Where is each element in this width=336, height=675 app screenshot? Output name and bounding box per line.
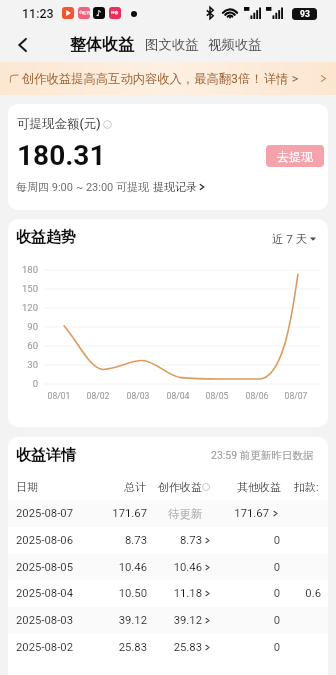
staticText: 8.73: [101, 534, 147, 547]
button[interactable]: 近 7 天: [270, 230, 318, 248]
staticText: 总计: [104, 480, 146, 494]
staticText: 0: [256, 534, 280, 547]
staticText: 08/07: [276, 391, 316, 401]
staticText: 08/03: [118, 391, 158, 401]
staticText: 08/02: [78, 391, 118, 401]
staticText: 去提现: [277, 149, 313, 164]
staticText: 2025-08-02: [16, 641, 74, 654]
staticText: 图文收益: [145, 36, 199, 53]
staticText: 近 7 天: [272, 232, 308, 246]
button[interactable]: 2025-08-02: [8, 634, 328, 661]
staticText: 180.31: [17, 139, 106, 172]
button[interactable]: 去提现: [266, 145, 324, 167]
staticText: 0: [14, 378, 38, 389]
staticText: 0: [256, 561, 280, 574]
staticText: 8.73: [158, 534, 202, 547]
staticText: 2025-08-05: [16, 561, 74, 574]
staticText: 25.83: [101, 641, 147, 654]
button[interactable]: 视频收益: [206, 35, 264, 54]
staticText: 90: [14, 321, 38, 332]
button[interactable]: Back: [8, 30, 38, 60]
staticText: 150: [14, 283, 38, 294]
staticText: 视频收益: [208, 36, 262, 53]
staticText: 39.12: [158, 614, 202, 627]
staticText: 创作收益提高高互动内容收入，最高翻3倍！: [22, 71, 263, 86]
button[interactable]: 2025-08-03: [8, 607, 328, 634]
staticText: 待更新: [158, 507, 202, 521]
staticText: 小红书: [79, 11, 90, 16]
staticText: 08/01: [39, 391, 79, 401]
staticText: 0: [256, 641, 280, 654]
staticText: 详情 >: [264, 71, 299, 86]
button[interactable]: 图文收益: [143, 35, 201, 54]
staticText: 2025-08-07: [16, 507, 74, 520]
staticText: 08/06: [237, 391, 277, 401]
staticText: 08/05: [197, 391, 237, 401]
button[interactable]: 2025-08-04: [8, 580, 328, 607]
staticText: 整体收益: [70, 35, 134, 55]
staticText: 提现记录: [153, 180, 197, 194]
staticText: 创作收益: [158, 480, 202, 494]
staticText: 其他收益: [237, 480, 281, 494]
staticText: 10.46: [158, 561, 202, 574]
button[interactable]: 2025-08-05: [8, 554, 328, 581]
staticText: 11:23: [22, 6, 54, 21]
staticText: 93: [300, 9, 310, 19]
staticText: 收益趋势: [16, 228, 76, 247]
staticText: 2025-08-04: [16, 587, 74, 600]
staticText: 08/04: [158, 391, 198, 401]
button[interactable]: 2025-08-07: [8, 500, 328, 527]
staticText: 0.6: [281, 587, 321, 600]
staticText: 60: [14, 340, 38, 351]
staticText: 23:59 前更新昨日数据: [211, 449, 314, 462]
staticText: 180: [14, 264, 38, 275]
staticText: 171.67: [101, 507, 147, 520]
button[interactable]: 整体收益: [68, 34, 136, 56]
staticText: ♪: [96, 9, 102, 18]
staticText: 0: [256, 614, 280, 627]
button[interactable]: 创作收益提高高互动内容收入，最高翻3倍！: [0, 62, 336, 95]
staticText: 10.50: [101, 587, 147, 600]
button[interactable]: 提现记录: [153, 178, 205, 196]
staticText: 0: [256, 587, 280, 600]
staticText: 日期: [16, 480, 38, 494]
staticText: 25.83: [158, 641, 202, 654]
staticText: 2025-08-03: [16, 614, 74, 627]
staticText: 2025-08-06: [16, 534, 74, 547]
staticText: 171.67: [223, 507, 269, 520]
staticText: 抖音: [111, 11, 119, 16]
staticText: 11.18: [158, 587, 202, 600]
staticText: 30: [14, 359, 38, 370]
staticText: 120: [14, 302, 38, 313]
staticText: 39.12: [101, 614, 147, 627]
button[interactable]: 2025-08-06: [8, 527, 328, 554]
staticText: 可提现金额(元): [17, 116, 101, 132]
staticText: 10.46: [101, 561, 147, 574]
staticText: 每周四 9:00 ~ 23:00 可提现: [16, 180, 149, 194]
staticText: 扣款:: [294, 480, 319, 494]
staticText: 收益详情: [16, 446, 76, 465]
